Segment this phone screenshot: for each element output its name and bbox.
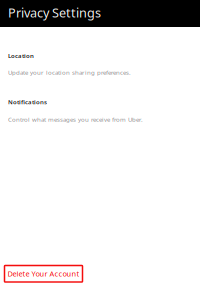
staticText: Update your location sharing preferences…: [8, 68, 131, 76]
staticText: Notifications: [8, 98, 47, 106]
staticText: Location: [8, 51, 34, 60]
staticText: Control what messages you receive from U…: [8, 115, 143, 124]
button[interactable]: Delete Your Account: [4, 265, 82, 282]
staticText: Delete Your Account: [7, 269, 79, 279]
button[interactable]: Location: [0, 51, 200, 76]
staticText: Privacy Settings: [8, 4, 101, 21]
button[interactable]: Notifications: [0, 98, 200, 124]
